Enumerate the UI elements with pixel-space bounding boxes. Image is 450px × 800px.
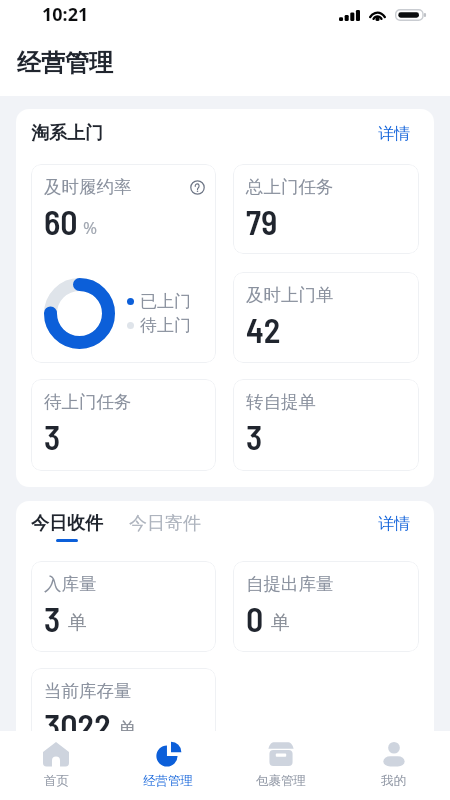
button[interactable]: 详情 (378, 512, 419, 534)
staticText: 单 (118, 718, 137, 742)
staticText: 自提出库量 (246, 573, 334, 595)
staticText: 首页 (44, 773, 69, 789)
staticText: 单 (68, 611, 87, 635)
button[interactable]: 今日寄件 (129, 512, 201, 535)
button[interactable]: 自提出库量 (233, 561, 419, 652)
button[interactable]: 入库量 (31, 561, 216, 652)
staticText: 当前库存量 (44, 680, 132, 702)
staticText: % (83, 216, 98, 239)
staticText: 0 (246, 598, 264, 639)
other: Help (190, 180, 205, 195)
staticText: 10:21 (42, 2, 89, 27)
button[interactable]: 总上门任务 (233, 164, 419, 254)
button[interactable]: 详情 (378, 124, 419, 144)
button[interactable]: 首页 (0, 731, 112, 800)
staticText: 单 (271, 611, 290, 635)
staticText: 今日寄件 (129, 512, 201, 535)
staticText: 待上门任务 (44, 391, 132, 413)
staticText: 3022 (44, 705, 111, 746)
button[interactable]: 经营管理 (112, 731, 224, 800)
staticText: 经营管理 (143, 773, 193, 789)
staticText: 淘系上门 (31, 122, 103, 145)
button[interactable]: 待上门任务 (31, 379, 216, 471)
button[interactable]: 转自提单 (233, 379, 419, 471)
staticText: 总上门任务 (246, 176, 334, 198)
staticText: 3 (44, 598, 61, 639)
staticText: 3 (246, 416, 263, 457)
staticText: 3 (44, 416, 61, 457)
button[interactable]: 我的 (337, 731, 450, 800)
button[interactable]: 今日收件 (31, 512, 103, 542)
staticText: 及时上门单 (246, 284, 334, 306)
staticText: 入库量 (44, 573, 97, 595)
button[interactable]: 包裹管理 (224, 731, 337, 800)
button[interactable]: 及时履约率 (31, 164, 216, 363)
staticText: 经营管理 (17, 48, 450, 78)
staticText: 今日收件 (31, 512, 103, 535)
staticText: 包裹管理 (256, 773, 306, 789)
staticText: 转自提单 (246, 391, 316, 413)
staticText: 待上门 (140, 315, 191, 336)
staticText: 及时履约率 (44, 176, 132, 198)
staticText: 详情 (378, 514, 410, 534)
staticText: 已上门 (140, 291, 191, 312)
staticText: 42 (246, 309, 281, 350)
staticText: 60 (44, 201, 78, 242)
staticText: 79 (246, 201, 278, 242)
button[interactable]: 当前库存量 (31, 668, 216, 760)
staticText: 详情 (378, 124, 410, 144)
staticText: 我的 (381, 773, 406, 789)
button[interactable]: 及时上门单 (233, 272, 419, 363)
